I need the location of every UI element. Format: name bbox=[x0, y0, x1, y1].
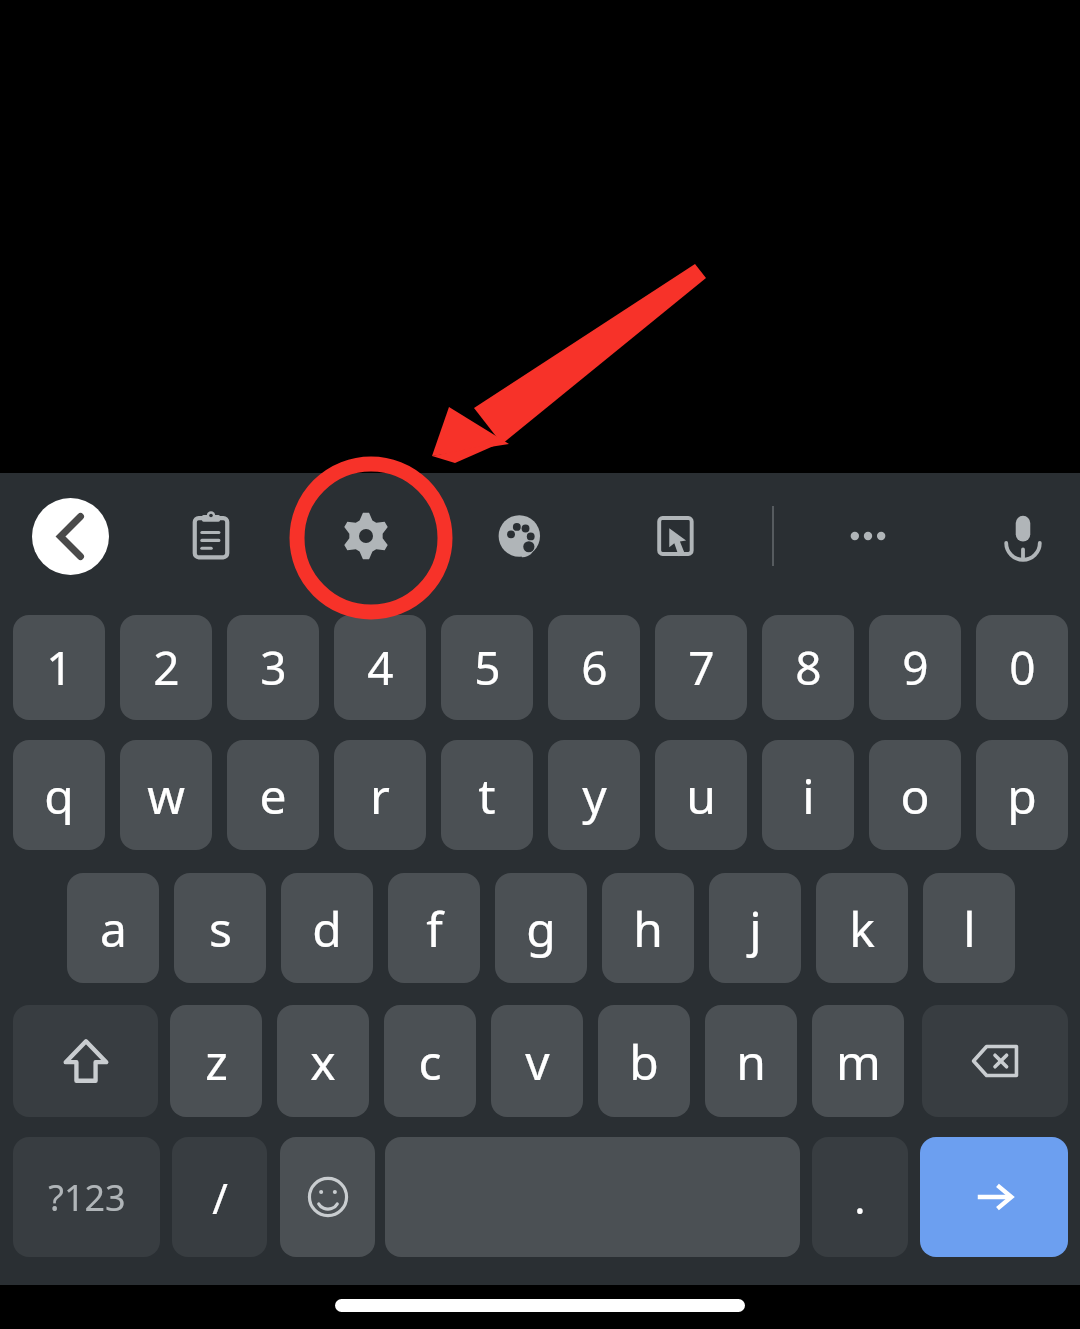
button[interactable]: Clipboard bbox=[172, 497, 250, 575]
button[interactable]: Backspace bbox=[922, 1005, 1068, 1117]
staticText: 3 bbox=[260, 636, 287, 699]
staticText: k bbox=[849, 896, 875, 961]
staticText: u bbox=[686, 763, 716, 828]
staticText: f bbox=[426, 896, 443, 961]
staticText: a bbox=[100, 896, 127, 961]
button[interactable]: Voice input bbox=[984, 497, 1062, 575]
staticText: d bbox=[312, 896, 342, 961]
staticText: h bbox=[633, 896, 663, 961]
button[interactable]: o bbox=[869, 740, 961, 850]
staticText: / bbox=[212, 1169, 228, 1226]
staticText: y bbox=[582, 763, 607, 828]
button[interactable]: 2 bbox=[120, 615, 212, 720]
staticText: 7 bbox=[688, 636, 715, 699]
staticText: 0 bbox=[1009, 636, 1036, 699]
button[interactable]: Back bbox=[32, 498, 109, 575]
staticText: i bbox=[802, 763, 815, 828]
button[interactable]: Enter bbox=[920, 1137, 1068, 1257]
button[interactable]: m bbox=[812, 1005, 904, 1117]
staticText: n bbox=[736, 1029, 766, 1094]
staticText: e bbox=[259, 763, 287, 828]
staticText: s bbox=[209, 896, 232, 961]
button[interactable]: l bbox=[923, 873, 1015, 983]
button[interactable]: p bbox=[976, 740, 1068, 850]
staticText: q bbox=[44, 763, 74, 828]
staticText: 8 bbox=[795, 636, 822, 699]
staticText: g bbox=[526, 896, 556, 961]
staticText: j bbox=[749, 896, 762, 961]
button[interactable]: v bbox=[491, 1005, 583, 1117]
button[interactable]: d bbox=[281, 873, 373, 983]
button[interactable]: ?123 bbox=[13, 1137, 160, 1257]
staticText: o bbox=[900, 763, 930, 828]
button[interactable]: 0 bbox=[976, 615, 1068, 720]
button[interactable]: w bbox=[120, 740, 212, 850]
staticText: p bbox=[1007, 763, 1037, 828]
button[interactable]: q bbox=[13, 740, 105, 850]
staticText: 9 bbox=[902, 636, 929, 699]
button[interactable]: z bbox=[170, 1005, 262, 1117]
button[interactable]: a bbox=[67, 873, 159, 983]
staticText: r bbox=[370, 763, 390, 828]
staticText: 1 bbox=[46, 636, 73, 699]
button[interactable]: More options bbox=[829, 497, 907, 575]
button[interactable]: y bbox=[548, 740, 640, 850]
staticText: t bbox=[478, 763, 496, 828]
button[interactable]: c bbox=[384, 1005, 476, 1117]
button[interactable]: x bbox=[277, 1005, 369, 1117]
staticText: . bbox=[854, 1169, 866, 1226]
button[interactable]: 3 bbox=[227, 615, 319, 720]
staticText: 5 bbox=[474, 636, 501, 699]
staticText: 2 bbox=[153, 636, 180, 699]
button[interactable]: k bbox=[816, 873, 908, 983]
button[interactable]: t bbox=[441, 740, 533, 850]
button[interactable]: b bbox=[598, 1005, 690, 1117]
button[interactable]: Settings bbox=[327, 497, 405, 575]
staticText: m bbox=[836, 1029, 881, 1094]
staticText: l bbox=[963, 896, 976, 961]
button[interactable]: . bbox=[812, 1137, 908, 1257]
button[interactable]: / bbox=[172, 1137, 267, 1257]
button[interactable]: Themes bbox=[482, 497, 560, 575]
button[interactable]: 8 bbox=[762, 615, 854, 720]
button[interactable]: 1 bbox=[13, 615, 105, 720]
button[interactable]: Emoji bbox=[280, 1137, 375, 1257]
button[interactable]: g bbox=[495, 873, 587, 983]
button[interactable]: j bbox=[709, 873, 801, 983]
button[interactable]: 7 bbox=[655, 615, 747, 720]
staticText: b bbox=[629, 1029, 659, 1094]
staticText: z bbox=[205, 1029, 228, 1094]
button[interactable]: Floating keyboard bbox=[637, 497, 715, 575]
button[interactable]: Shift bbox=[13, 1005, 158, 1117]
staticText: x bbox=[310, 1029, 336, 1094]
button[interactable]: n bbox=[705, 1005, 797, 1117]
button[interactable]: h bbox=[602, 873, 694, 983]
button[interactable]: e bbox=[227, 740, 319, 850]
button[interactable]: f bbox=[388, 873, 480, 983]
button[interactable]: u bbox=[655, 740, 747, 850]
button[interactable]: 5 bbox=[441, 615, 533, 720]
button[interactable]: 4 bbox=[334, 615, 426, 720]
staticText: c bbox=[418, 1029, 442, 1094]
staticText: 4 bbox=[367, 636, 394, 699]
button[interactable]: s bbox=[174, 873, 266, 983]
button[interactable]: 9 bbox=[869, 615, 961, 720]
staticText: v bbox=[525, 1029, 550, 1094]
staticText: ?123 bbox=[48, 1173, 126, 1222]
button[interactable]: r bbox=[334, 740, 426, 850]
staticText: 6 bbox=[581, 636, 608, 699]
button[interactable]: 6 bbox=[548, 615, 640, 720]
button[interactable]: i bbox=[762, 740, 854, 850]
staticText: w bbox=[147, 763, 185, 828]
